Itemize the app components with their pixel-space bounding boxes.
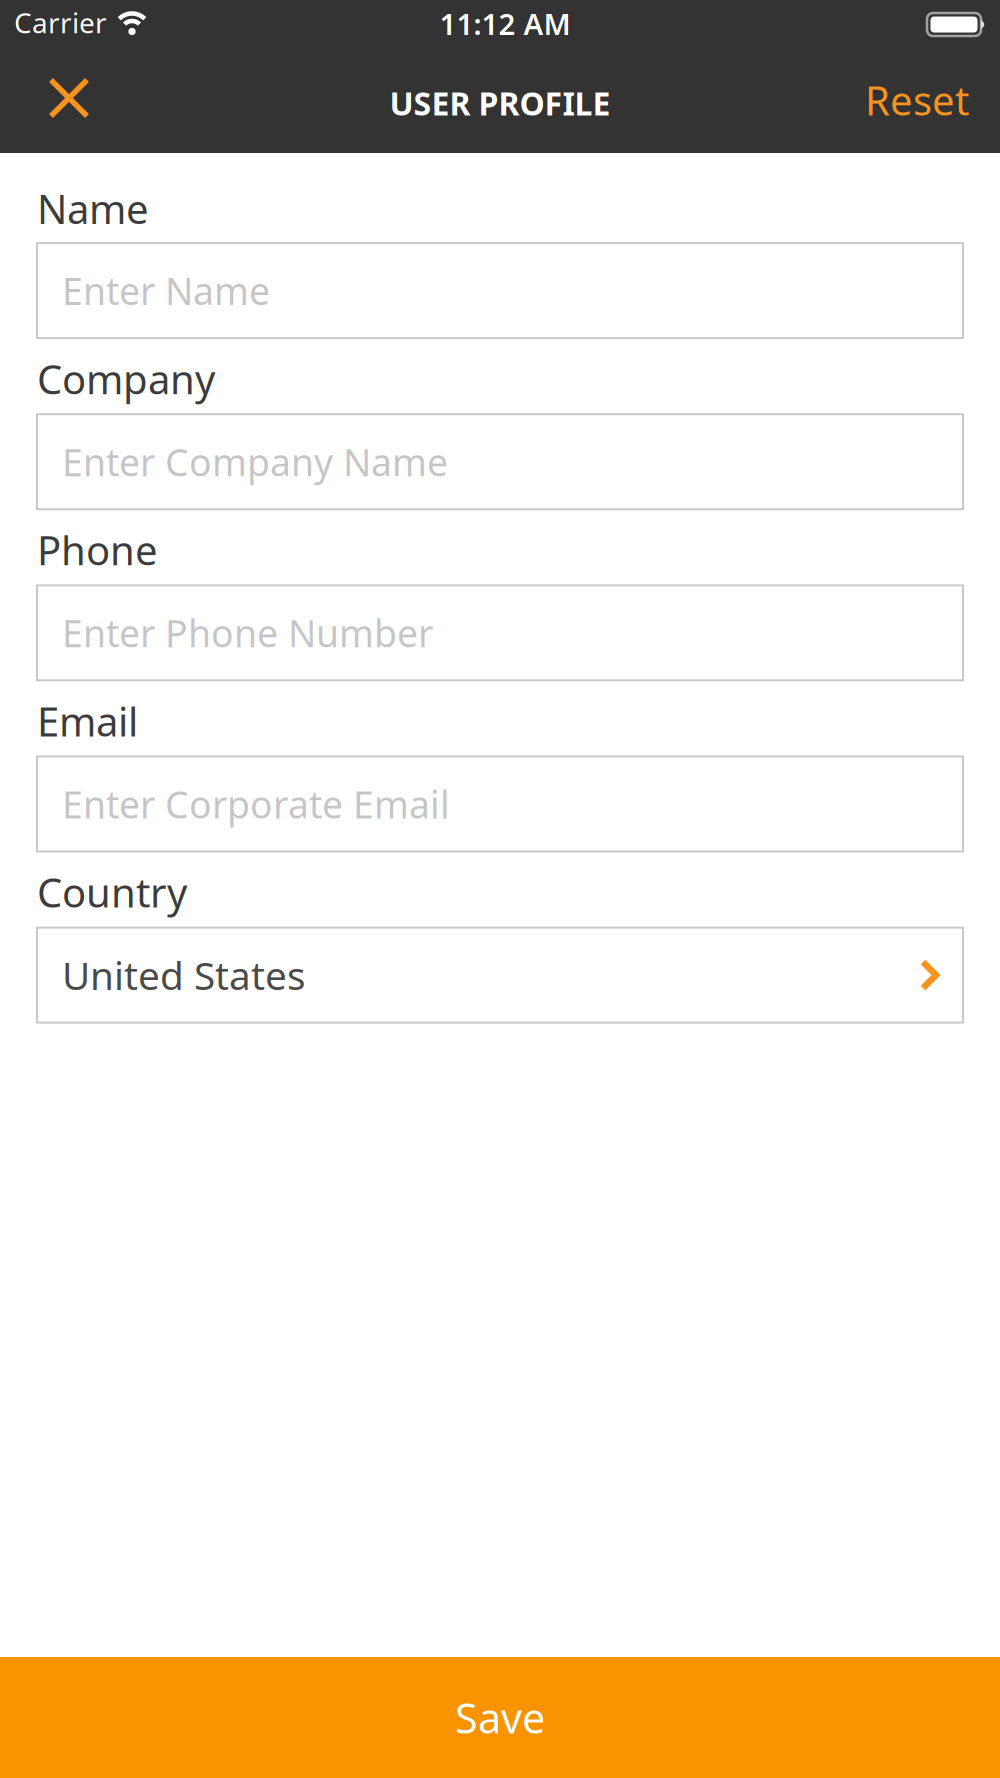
button[interactable]: Save [0, 1657, 1000, 1778]
button[interactable]: Reset [845, 48, 1000, 157]
staticText: Phone [37, 523, 158, 576]
staticText: Name [37, 182, 149, 235]
staticText: Email [37, 694, 138, 747]
staticText: Enter Name [62, 266, 270, 315]
button[interactable]: Enter Corporate Email [37, 756, 963, 851]
button[interactable]: Enter Name [37, 243, 963, 338]
staticText: Enter Company Name [62, 437, 448, 486]
staticText: Save [455, 1690, 545, 1745]
staticText: Country [37, 865, 187, 919]
button[interactable]: Enter Phone Number [37, 585, 963, 680]
button[interactable]: Close [0, 53, 109, 153]
button[interactable]: United States [37, 928, 963, 1023]
staticText: Enter Corporate Email [62, 779, 450, 829]
staticText: Company [37, 352, 215, 405]
staticText: Reset [865, 73, 969, 126]
button[interactable]: Enter Company Name [37, 414, 963, 509]
staticText: Carrier [14, 4, 107, 41]
staticText: United States [62, 949, 306, 1001]
staticText: USER PROFILE [389, 82, 610, 124]
staticText: Enter Phone Number [62, 608, 433, 658]
staticText: 11:12 AM [439, 4, 570, 43]
